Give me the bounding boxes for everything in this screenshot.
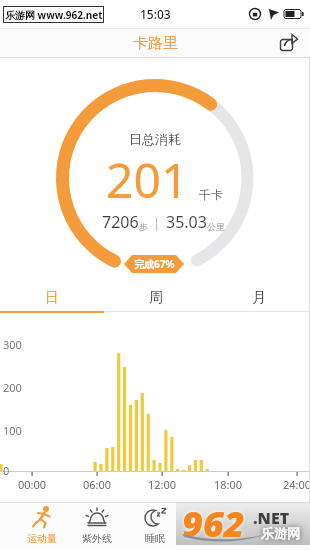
button[interactable]: 紫外线	[69, 504, 125, 550]
staticText: 06:00	[83, 477, 112, 492]
button[interactable]: 运动量	[14, 504, 70, 550]
staticText: 100	[3, 423, 22, 438]
staticText: 200	[3, 380, 22, 395]
staticText: 乐游网	[261, 525, 300, 541]
staticText: 18:00	[214, 477, 243, 492]
button[interactable]: 睡眠	[127, 504, 183, 550]
staticText: 公里	[207, 221, 225, 232]
staticText: 睡眠	[145, 532, 165, 545]
staticText: 12:00	[148, 477, 177, 492]
staticText: 步	[139, 221, 148, 232]
staticText: 日	[45, 289, 59, 307]
staticText: 月	[252, 289, 266, 307]
staticText: 35.03	[166, 211, 207, 233]
staticText: 周	[149, 289, 163, 307]
staticText: 0	[3, 463, 10, 478]
button[interactable]: 日	[0, 284, 104, 313]
staticText: 201	[106, 147, 189, 212]
button[interactable]: 周	[104, 284, 207, 313]
staticText: 24:00	[283, 477, 310, 492]
staticText: 日总消耗	[129, 131, 181, 147]
staticText: 00:00	[18, 477, 47, 492]
staticText: 紫外线	[82, 532, 112, 545]
staticText: .NET	[253, 507, 290, 529]
staticText: 乐游网 www.962.net	[5, 8, 103, 22]
staticText: 千卡	[199, 187, 223, 202]
button[interactable]: 月	[207, 284, 310, 313]
staticText: 运动量	[27, 532, 57, 545]
staticText: 300	[3, 337, 22, 352]
button[interactable]	[278, 32, 300, 54]
staticText: 7206	[102, 211, 139, 233]
staticText: |	[153, 214, 161, 232]
staticText: 15:03	[140, 6, 171, 22]
staticText: 卡路里	[133, 34, 178, 53]
staticText: 962	[182, 499, 245, 541]
staticText: 完成67%	[134, 257, 175, 271]
